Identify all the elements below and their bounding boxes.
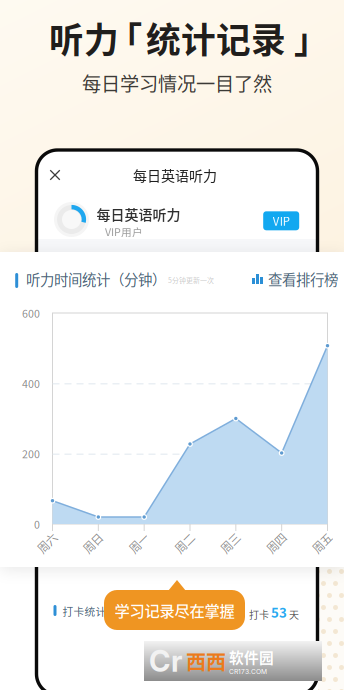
staticText: 周一 [128, 535, 150, 551]
staticText: 天 [287, 607, 299, 622]
staticText: 周四 [265, 535, 287, 551]
staticText: VIP [273, 213, 290, 229]
staticText: 53 [271, 602, 287, 622]
staticText: 周六 [36, 535, 58, 551]
staticText: 每日学习情况一目了然 [82, 69, 272, 97]
staticText: 统计记录 [146, 13, 286, 63]
staticText: 听力时间统计（分钟） [26, 269, 166, 289]
staticText: 周三 [219, 535, 241, 551]
staticText: 每日英语听力 [133, 165, 217, 185]
staticText: 」 [294, 13, 329, 63]
staticText: 学习记录尽在掌握 [114, 599, 234, 621]
staticText: 「 [107, 13, 142, 63]
button[interactable]: 查看排行榜 [0, 252, 344, 567]
staticText: 400 [22, 376, 40, 391]
staticText: 600 [22, 305, 40, 321]
staticText: 软件园 [229, 646, 274, 667]
staticText: 200 [22, 446, 40, 461]
staticText: 0 [34, 516, 40, 532]
button[interactable]: 关闭 [36, 150, 317, 690]
staticText: 每日英语听力 [96, 204, 180, 224]
staticText: 打卡 [249, 607, 271, 622]
staticText: 打卡统计 [62, 603, 106, 619]
staticText: 查看排行榜 [268, 269, 338, 289]
staticText: 5分钟更新一次 [168, 275, 214, 285]
staticText: 西西 [186, 646, 226, 675]
staticText: Cr [149, 643, 183, 679]
staticText: 周二 [173, 535, 195, 551]
staticText: 周五 [311, 535, 333, 551]
button[interactable]: VIP [36, 150, 317, 690]
staticText: CR173.COM [229, 668, 267, 676]
staticText: VIP用户 [105, 224, 143, 239]
staticText: 周日 [82, 535, 104, 551]
staticText: 听力 [49, 13, 119, 63]
